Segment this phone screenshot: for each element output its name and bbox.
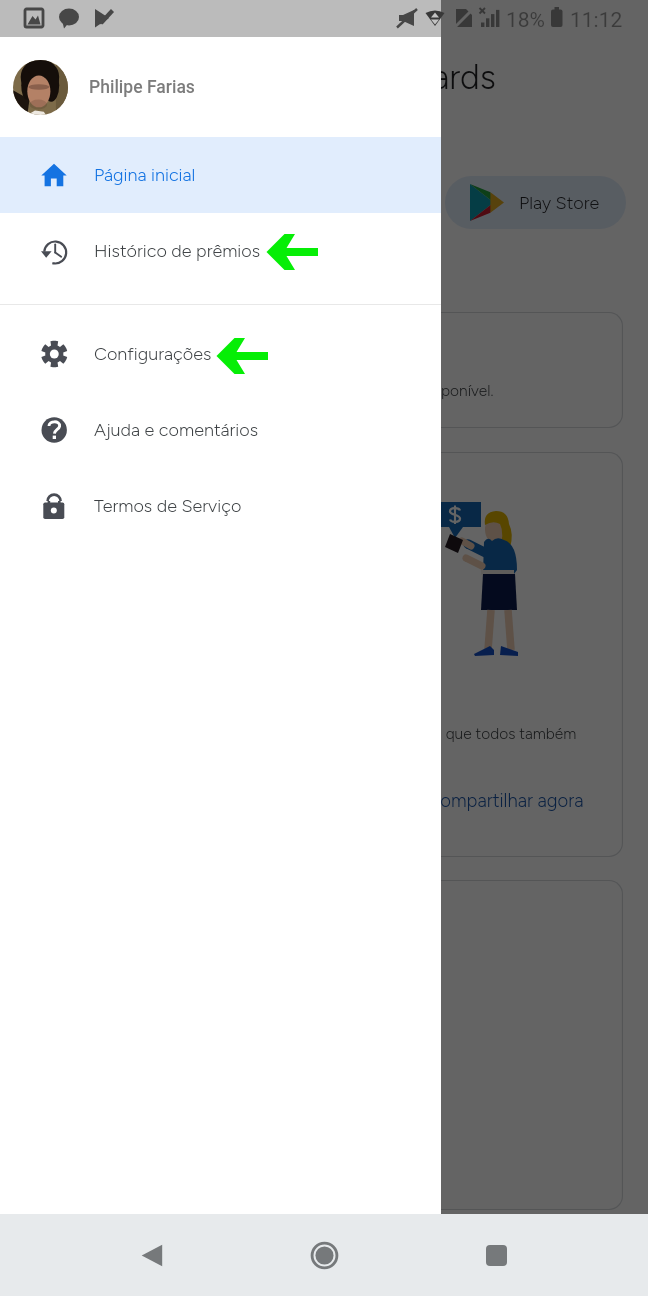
button[interactable]: Histórico de prêmios xyxy=(0,213,441,289)
staticText: Convide seus amigos e ganhem juntos. Faç… xyxy=(104,724,577,743)
staticText: Histórico de prêmios xyxy=(94,240,261,262)
staticText: Google Opinion Rewards xyxy=(121,57,496,98)
staticText: Philipe Farias xyxy=(89,77,195,98)
staticText: Termos de Serviço xyxy=(94,495,242,517)
button[interactable]: Play Store xyxy=(445,176,626,229)
button[interactable]: Recent apps xyxy=(452,1214,540,1296)
button[interactable]: Ajuda e comentários xyxy=(0,392,441,468)
button[interactable] xyxy=(25,880,623,1210)
button[interactable]: Configurações xyxy=(0,316,441,392)
button[interactable] xyxy=(25,312,623,428)
staticText: Página inicial xyxy=(94,164,196,186)
staticText: 18% xyxy=(506,8,545,33)
staticText: 11:12 xyxy=(570,8,623,33)
button[interactable] xyxy=(25,452,623,857)
button[interactable]: Termos de Serviço xyxy=(0,468,441,544)
staticText: Play Store xyxy=(519,192,600,214)
button[interactable]: Philipe Farias xyxy=(0,37,441,137)
button[interactable]: Back xyxy=(108,1214,196,1296)
staticText: Ajuda e comentários xyxy=(94,419,259,441)
button[interactable]: Página inicial xyxy=(0,137,441,213)
staticText: Nenhuma pesquisa disponível. xyxy=(286,381,494,400)
staticText: Configurações xyxy=(94,343,212,365)
button[interactable]: Home xyxy=(294,1225,354,1285)
staticText: Compartilhar agora xyxy=(427,789,584,811)
